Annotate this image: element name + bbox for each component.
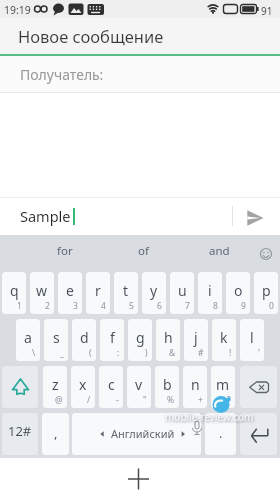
staticText: 6 <box>157 300 162 312</box>
staticText: r <box>95 281 101 300</box>
staticText: Получатель: <box>20 65 104 84</box>
staticText: 19:19 <box>4 3 31 17</box>
staticText: z <box>52 375 59 394</box>
staticText: q <box>10 281 19 300</box>
staticText: y <box>150 281 158 300</box>
staticText: % <box>167 394 175 406</box>
button[interactable]: y <box>142 272 166 314</box>
button[interactable]: x <box>71 366 95 408</box>
button[interactable]: o <box>226 272 250 314</box>
button[interactable]: Получатель: <box>0 56 280 93</box>
staticText: \ <box>32 347 36 359</box>
staticText: 91 <box>261 4 273 18</box>
button[interactable]: w <box>30 272 54 314</box>
button[interactable]: Английский <box>72 413 201 455</box>
staticText: c <box>108 375 115 394</box>
staticText: # <box>198 347 204 359</box>
staticText: f <box>110 328 115 347</box>
staticText: 7 <box>185 300 190 312</box>
staticText: o <box>234 281 243 300</box>
staticText: n <box>191 375 200 394</box>
button[interactable] <box>237 197 280 235</box>
button[interactable]: of <box>119 237 167 264</box>
button[interactable]: , <box>42 413 69 455</box>
staticText: ) <box>145 347 148 359</box>
button[interactable]: j <box>184 319 208 361</box>
button[interactable]: l <box>240 319 264 361</box>
staticText: Sample <box>20 206 71 226</box>
button[interactable]: and <box>195 237 243 264</box>
staticText: and <box>209 243 230 259</box>
staticText: g <box>136 328 145 347</box>
button[interactable]: s <box>44 319 68 361</box>
button[interactable]: q <box>2 272 26 314</box>
staticText: k <box>220 328 228 347</box>
staticText: i <box>208 281 212 300</box>
staticText: ( <box>89 347 92 359</box>
staticText: l <box>250 328 254 347</box>
button[interactable]: r <box>86 272 110 314</box>
button[interactable] <box>0 458 280 498</box>
staticText: b <box>163 375 172 394</box>
staticText: mobile-review.com <box>165 410 254 424</box>
button[interactable] <box>240 413 277 455</box>
staticText: p <box>262 281 271 300</box>
staticText: " <box>143 394 147 406</box>
staticText: h <box>164 328 173 347</box>
staticText: w <box>36 281 48 300</box>
staticText: Английский <box>111 426 175 441</box>
staticText: of <box>138 243 149 259</box>
staticText: 4 <box>101 300 106 312</box>
staticText: + <box>198 394 203 406</box>
button[interactable]: b <box>155 366 179 408</box>
staticText: 0 <box>269 300 274 312</box>
staticText: s <box>53 328 60 347</box>
staticText: , <box>54 424 58 442</box>
button[interactable]: a <box>16 319 40 361</box>
staticText: 9 <box>241 300 246 312</box>
staticText: for <box>57 243 73 259</box>
button[interactable]: i <box>198 272 222 314</box>
button[interactable]: 12# <box>2 413 38 455</box>
staticText: t <box>123 281 129 300</box>
button[interactable]: n <box>183 366 207 408</box>
button[interactable]: h <box>156 319 180 361</box>
button[interactable] <box>254 242 278 266</box>
staticText: 2 <box>45 300 50 312</box>
staticText: x <box>79 375 87 394</box>
button[interactable]: f <box>100 319 124 361</box>
button[interactable]: v <box>127 366 151 408</box>
staticText: d <box>80 328 89 347</box>
button[interactable]: u <box>170 272 194 314</box>
button[interactable]: m <box>211 366 235 408</box>
staticText: @ <box>55 394 63 406</box>
staticText: . <box>219 424 223 442</box>
staticText: j <box>194 328 198 347</box>
button[interactable]: z <box>43 366 67 408</box>
staticText: : <box>117 347 120 359</box>
staticText: 5 <box>129 300 134 312</box>
staticText: u <box>178 281 187 300</box>
button[interactable]: d <box>72 319 96 361</box>
staticText: 3 <box>73 300 78 312</box>
button[interactable]: c <box>99 366 123 408</box>
staticText: & <box>169 347 176 359</box>
staticText: - <box>116 394 119 406</box>
staticText: v <box>135 375 143 394</box>
staticText: _ <box>60 347 64 359</box>
button[interactable]: t <box>114 272 138 314</box>
button[interactable]: k <box>212 319 236 361</box>
button[interactable] <box>240 366 277 408</box>
staticText: e <box>66 281 74 300</box>
staticText: ? <box>227 394 231 406</box>
button[interactable] <box>2 366 38 408</box>
button[interactable]: p <box>254 272 278 314</box>
button[interactable]: g <box>128 319 152 361</box>
staticText: ! <box>229 347 232 359</box>
staticText: 8 <box>213 300 218 312</box>
button[interactable]: e <box>58 272 82 314</box>
button[interactable]: . <box>205 413 236 455</box>
staticText: 1 <box>17 300 22 312</box>
staticText: m <box>216 375 230 394</box>
button[interactable]: for <box>41 237 89 264</box>
